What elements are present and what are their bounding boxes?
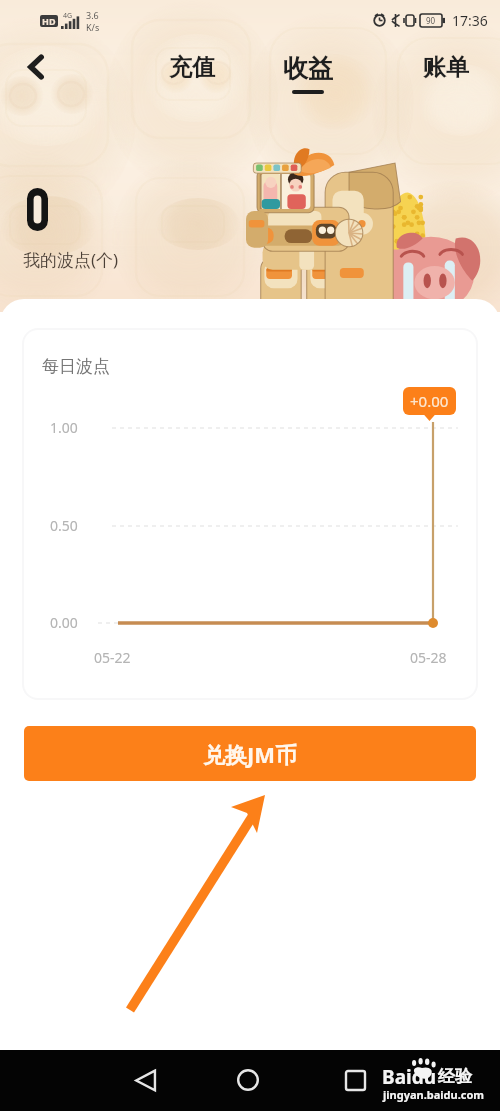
staticText: 账单 bbox=[423, 53, 469, 82]
button[interactable]: 收益 bbox=[270, 48, 346, 100]
staticText: 0.50 bbox=[50, 516, 78, 535]
button[interactable]: 每日波点 chart bbox=[24, 330, 476, 698]
staticText: 我的波点(个) bbox=[23, 248, 119, 271]
staticText: 17:36 bbox=[452, 11, 488, 30]
button[interactable]: Recents bbox=[334, 1059, 376, 1101]
button[interactable]: 充值 bbox=[154, 48, 230, 88]
staticText: +0.00 bbox=[410, 391, 449, 411]
staticText: jingyan.baidu.com bbox=[383, 1087, 485, 1102]
staticText: 0.00 bbox=[50, 613, 78, 632]
staticText: 经验 bbox=[438, 1066, 472, 1087]
staticText: 3.6 bbox=[86, 9, 99, 21]
button[interactable]: Home bbox=[227, 1059, 269, 1101]
button[interactable]: Back bbox=[14, 45, 58, 89]
staticText: 4G bbox=[63, 11, 73, 21]
staticText: 05-22 bbox=[94, 648, 131, 667]
button[interactable]: 兑换JM币 bbox=[24, 726, 476, 781]
button[interactable]: 账单 bbox=[408, 48, 484, 88]
staticText: K/s bbox=[86, 21, 100, 33]
staticText: 每日波点 bbox=[42, 356, 110, 377]
staticText: HD bbox=[42, 15, 56, 27]
button[interactable]: Back bbox=[124, 1059, 166, 1101]
staticText: 充值 bbox=[169, 53, 215, 82]
staticText: 兑换JM币 bbox=[203, 739, 298, 769]
staticText: 05-28 bbox=[410, 648, 447, 667]
staticText: Baidu bbox=[382, 1064, 437, 1090]
staticText: 90 bbox=[426, 15, 436, 26]
staticText: 1.00 bbox=[50, 418, 78, 437]
staticText: 收益 bbox=[283, 53, 333, 84]
